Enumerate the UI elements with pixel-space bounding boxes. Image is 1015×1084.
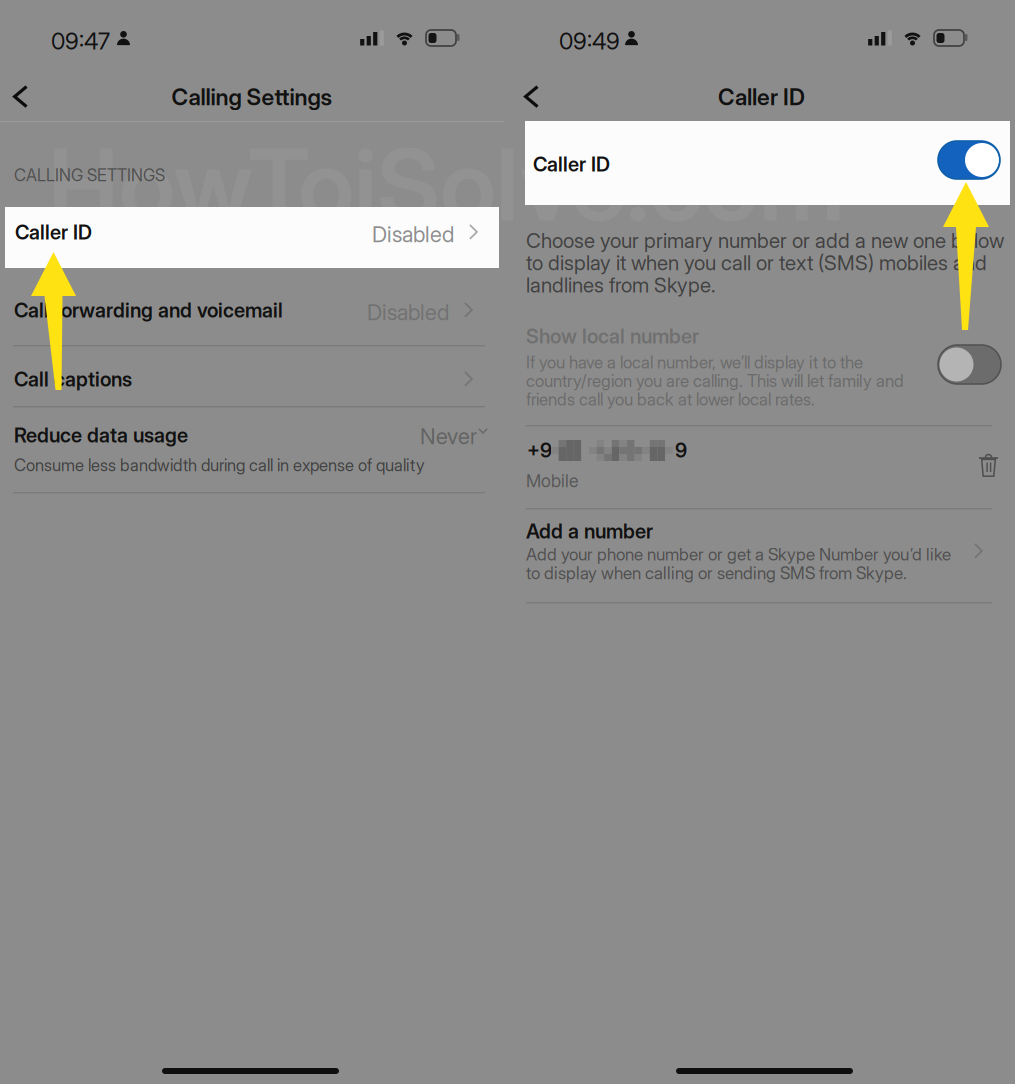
staticText: Caller ID xyxy=(718,83,805,111)
staticText: Consume less bandwidth during call in ex… xyxy=(14,455,425,475)
staticText: CALLING SETTINGS xyxy=(14,165,165,185)
button[interactable]: Call forwarding and voicemail xyxy=(0,282,504,340)
staticText: country/region you are calling. This wil… xyxy=(526,370,904,391)
staticText: Choose your primary number or add a new … xyxy=(526,228,1004,253)
staticText: 9 xyxy=(675,438,687,462)
button[interactable]: Add a number xyxy=(508,513,1015,593)
staticText: Add your phone number or get a Skype Num… xyxy=(526,544,951,565)
staticText: Disabled xyxy=(367,299,449,325)
staticText: Caller ID xyxy=(15,220,92,244)
staticText: Calling Settings xyxy=(171,83,332,111)
staticText: to display it when you call or text (SMS… xyxy=(526,250,987,275)
staticText: friends call you back at lower local rat… xyxy=(526,389,815,409)
staticText: Never xyxy=(420,423,477,449)
staticText: 09:47 xyxy=(51,27,110,55)
staticText: to display when calling or sending SMS f… xyxy=(526,563,907,583)
button[interactable]: Caller ID xyxy=(938,141,1000,179)
button[interactable]: Delete number xyxy=(979,454,998,477)
staticText: Mobile xyxy=(526,470,579,491)
staticText: Call captions xyxy=(14,367,132,391)
staticText: Call forwarding and voicemail xyxy=(14,298,283,322)
button[interactable]: Reduce data usage xyxy=(0,414,504,492)
button[interactable]: Back xyxy=(10,83,52,117)
staticText: Caller ID xyxy=(533,152,610,176)
staticText: If you have a local number, we’ll displa… xyxy=(526,352,863,372)
button[interactable]: Caller ID xyxy=(5,207,499,268)
staticText: 09:49 xyxy=(559,27,620,55)
staticText: landlines from Skype. xyxy=(526,273,716,297)
staticText: Disabled xyxy=(372,221,454,247)
staticText: Add a number xyxy=(526,519,653,543)
staticText: Show local number xyxy=(526,324,699,348)
staticText: HowToiSolve.com xyxy=(48,125,845,244)
button[interactable]: Back xyxy=(521,83,563,117)
button[interactable]: Show local number xyxy=(938,345,1001,384)
staticText: +9 xyxy=(527,438,552,462)
staticText: Reduce data usage xyxy=(14,423,188,447)
button[interactable]: Call captions xyxy=(0,352,504,406)
